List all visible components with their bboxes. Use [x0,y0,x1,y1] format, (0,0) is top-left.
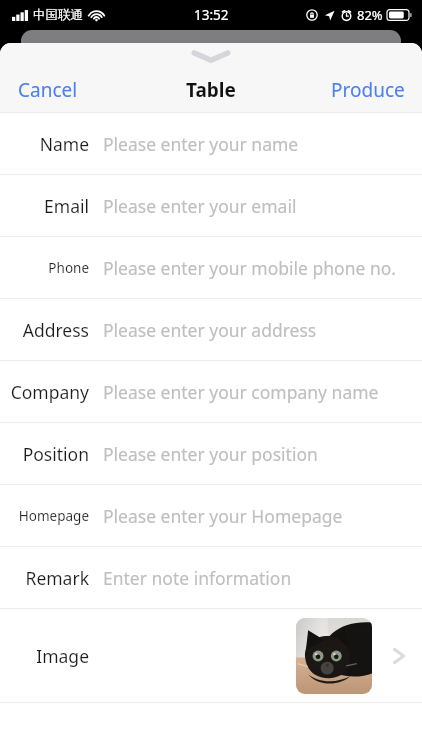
staticText: Email [44,194,89,218]
staticText: Company [10,380,89,404]
button[interactable]: Email [0,175,422,236]
staticText: Table [186,77,236,103]
button[interactable]: Phone number [0,237,422,298]
staticText: 82% [357,6,383,24]
staticText: Please enter your address [103,318,317,342]
staticText: Please enter your company name [103,380,379,404]
button[interactable]: Company [0,361,422,422]
staticText: Please enter your position [103,442,318,466]
staticText: Produce [331,77,405,103]
staticText: Please enter your mobile phone no. [103,256,397,280]
staticText: Image [36,644,89,668]
other: Open image picker [388,645,410,667]
staticText: 13:52 [194,6,229,24]
button[interactable]: Address [0,299,422,360]
staticText: Please enter your email [103,194,297,218]
button[interactable]: Position [0,423,422,484]
staticText: Address [22,318,89,342]
other: Selected photo [296,618,372,694]
staticText: Please enter your name [103,132,299,156]
staticText: Phone number [0,259,89,277]
staticText: Please enter your Homepage [103,504,343,528]
staticText: Cancel [18,77,78,103]
staticText: Enter note information [103,566,292,590]
button[interactable]: Name [0,113,422,174]
button[interactable]: Homepage [0,485,422,546]
button[interactable]: Produce [319,70,417,110]
button[interactable]: Remark [0,547,422,608]
button[interactable]: Image [0,609,422,702]
button[interactable]: Cancel [6,70,90,110]
staticText: Remark [25,566,89,590]
staticText: Position [22,442,89,466]
staticText: 中国联通 [33,7,83,23]
staticText: Homepage [18,507,89,525]
staticText: Name [39,132,89,156]
